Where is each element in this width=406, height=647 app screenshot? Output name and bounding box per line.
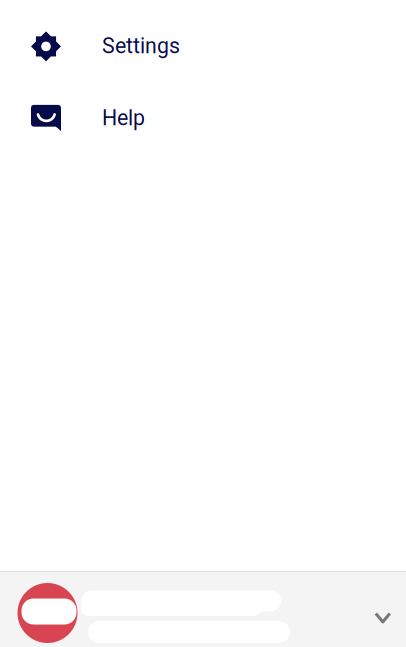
button[interactable]: Help	[0, 82, 406, 154]
staticText: Help	[102, 105, 145, 130]
staticText: Settings	[102, 33, 180, 58]
button[interactable]: Settings	[0, 10, 406, 82]
button[interactable]	[0, 571, 406, 647]
